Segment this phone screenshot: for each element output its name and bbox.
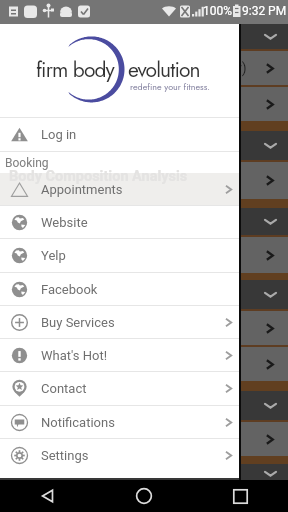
button[interactable]: Yelp bbox=[0, 239, 240, 272]
button[interactable] bbox=[0, 24, 288, 49]
staticText: r) bbox=[237, 60, 247, 76]
staticText: Body Composition Analysis bbox=[9, 168, 188, 185]
button[interactable] bbox=[0, 51, 288, 85]
button[interactable]: Notifications bbox=[0, 406, 240, 439]
staticText: Booking bbox=[5, 156, 49, 170]
staticText: Yelp bbox=[41, 248, 66, 263]
button[interactable] bbox=[0, 422, 288, 456]
button[interactable]: Contact bbox=[0, 372, 240, 405]
button[interactable] bbox=[0, 347, 288, 381]
button[interactable] bbox=[0, 131, 288, 160]
staticText: firm body bbox=[36, 55, 114, 85]
staticText: evolution bbox=[128, 55, 200, 85]
button[interactable] bbox=[0, 311, 288, 345]
button[interactable] bbox=[0, 280, 288, 309]
button[interactable]: What's Hot! bbox=[0, 339, 240, 372]
button[interactable] bbox=[0, 87, 288, 121]
button[interactable]: Home bbox=[96, 480, 192, 512]
button[interactable] bbox=[0, 391, 288, 420]
staticText: Website bbox=[41, 215, 88, 230]
button[interactable]: Website bbox=[0, 206, 240, 239]
button[interactable]: Buy Services bbox=[0, 306, 240, 339]
staticText: Notifications bbox=[41, 415, 115, 430]
button[interactable] bbox=[0, 208, 288, 235]
button[interactable]: Appointments bbox=[0, 173, 240, 206]
button[interactable]: Recent apps bbox=[192, 480, 288, 512]
button[interactable] bbox=[0, 162, 288, 199]
staticText: Settings bbox=[41, 448, 89, 463]
staticText: Log in bbox=[41, 127, 77, 142]
staticText: Contact bbox=[41, 381, 87, 396]
staticText: 100% bbox=[203, 4, 233, 18]
button[interactable]: Log in bbox=[0, 118, 240, 151]
button[interactable] bbox=[0, 237, 288, 273]
button[interactable] bbox=[0, 464, 288, 483]
button[interactable]: Back bbox=[0, 480, 96, 512]
staticText: redefine your fitness. bbox=[130, 80, 210, 93]
staticText: Appointments bbox=[41, 182, 123, 197]
button[interactable]: Facebook bbox=[0, 273, 240, 306]
staticText: What's Hot! bbox=[41, 348, 108, 363]
button[interactable]: Settings bbox=[0, 439, 240, 472]
staticText: 9:32 PM bbox=[242, 4, 287, 18]
staticText: Buy Services bbox=[41, 315, 115, 330]
staticText: Facebook bbox=[41, 282, 98, 297]
